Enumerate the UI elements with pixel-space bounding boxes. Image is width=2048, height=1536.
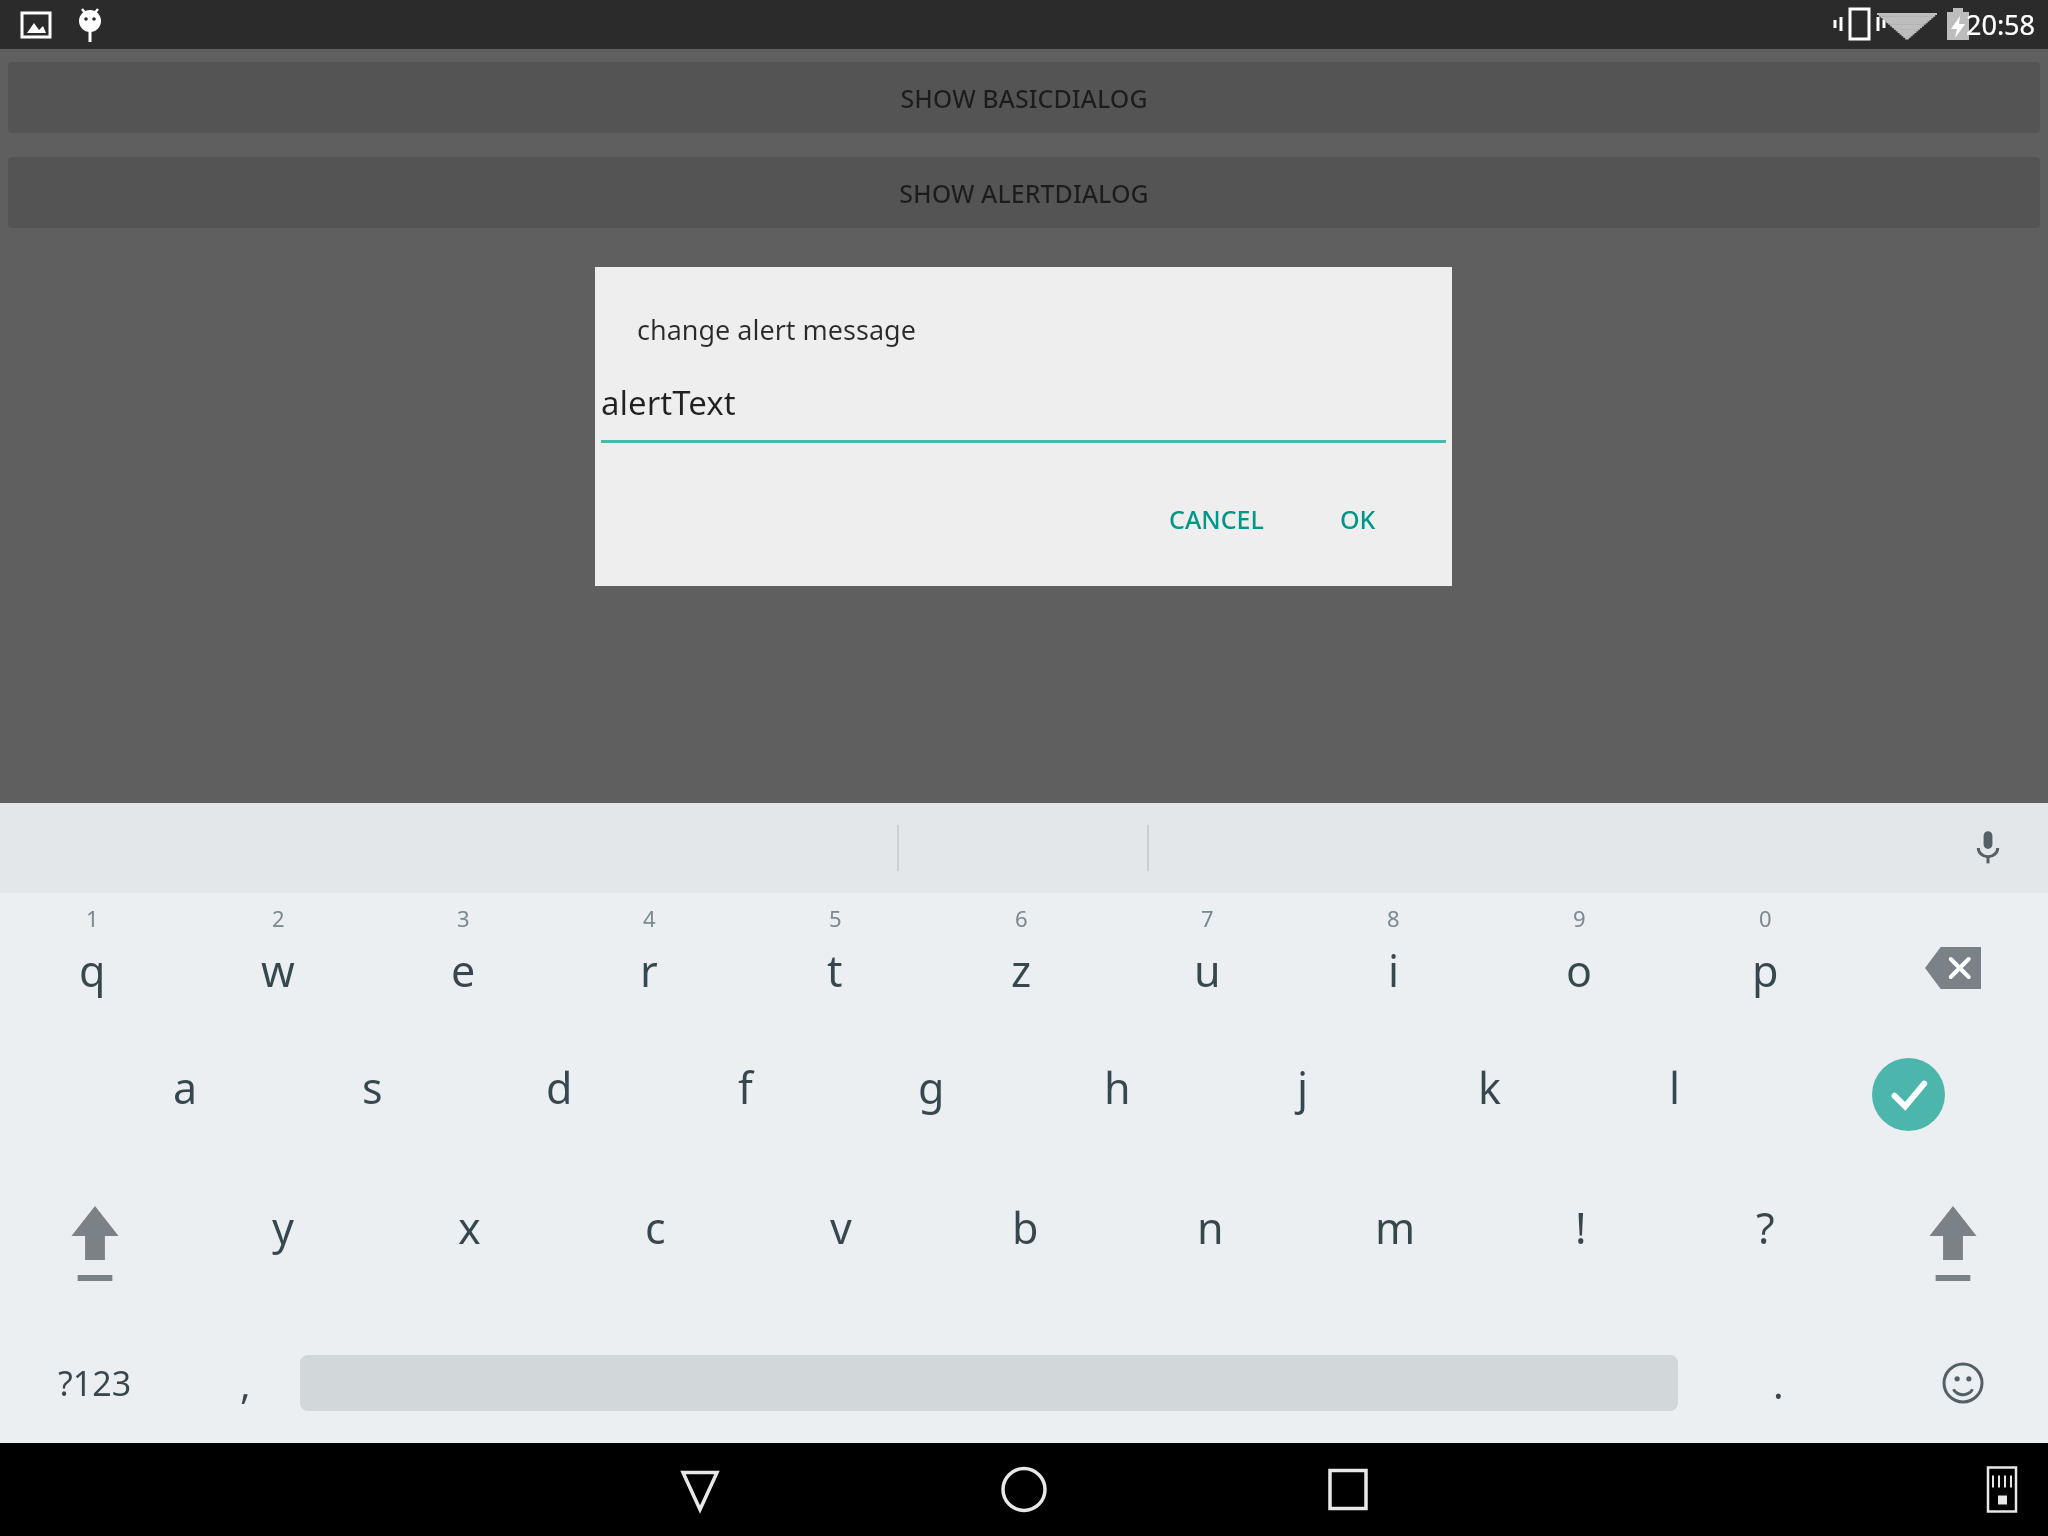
button[interactable]: Enter: [1768, 1058, 2048, 1188]
button[interactable]: 9: [1486, 903, 1672, 1033]
button[interactable]: 1: [0, 903, 185, 1033]
staticText: 9: [1573, 903, 1586, 933]
staticText: alertText: [601, 380, 736, 425]
button[interactable]: Recent apps: [1308, 1450, 1388, 1530]
staticText: b: [1012, 1198, 1039, 1257]
staticText: w: [261, 941, 295, 1000]
button[interactable]: ,: [190, 1333, 300, 1433]
button[interactable]: 2: [185, 903, 370, 1033]
staticText: k: [1478, 1058, 1501, 1117]
staticText: ?: [1756, 1198, 1775, 1257]
staticText: 5: [829, 903, 842, 933]
button[interactable]: 0: [1672, 903, 1858, 1033]
button[interactable]: g: [838, 1058, 1024, 1188]
button[interactable]: 8: [1300, 903, 1486, 1033]
button[interactable]: v: [748, 1198, 933, 1328]
staticText: !: [1575, 1198, 1587, 1257]
staticText: 1: [86, 903, 99, 933]
staticText: q: [79, 941, 106, 1000]
button[interactable]: .: [1678, 1333, 1878, 1433]
button[interactable]: s: [279, 1058, 466, 1188]
staticText: OK: [1340, 502, 1376, 536]
button[interactable]: h: [1024, 1058, 1210, 1188]
button[interactable]: k: [1396, 1058, 1582, 1188]
button[interactable]: m: [1303, 1198, 1488, 1328]
staticText: ?123: [58, 1360, 132, 1406]
staticText: f: [738, 1058, 753, 1117]
staticText: l: [1669, 1058, 1681, 1117]
button[interactable]: 3: [370, 903, 556, 1033]
button[interactable]: Shift: [1858, 1198, 2048, 1328]
staticText: y: [272, 1198, 294, 1257]
button[interactable]: ?: [1673, 1198, 1858, 1328]
button[interactable]: a: [92, 1058, 279, 1188]
button[interactable]: Home: [984, 1450, 1064, 1530]
button[interactable]: Shift: [0, 1198, 190, 1328]
staticText: SHOW ALERTDIALOG: [899, 176, 1149, 210]
staticText: c: [645, 1198, 666, 1257]
button[interactable]: Backspace: [1858, 903, 2048, 1033]
button[interactable]: 7: [1114, 903, 1300, 1033]
staticText: v: [830, 1198, 852, 1257]
staticText: s: [362, 1058, 383, 1117]
staticText: i: [1388, 941, 1400, 1000]
button[interactable]: c: [562, 1198, 748, 1328]
staticText: r: [640, 941, 658, 1000]
staticText: ,: [240, 1356, 251, 1410]
button[interactable]: Voice input: [1958, 818, 2018, 878]
staticText: CANCEL: [1169, 502, 1264, 536]
button[interactable]: ?123: [0, 1333, 190, 1433]
staticText: n: [1197, 1198, 1224, 1257]
button[interactable]: SHOW BASICDIALOG: [8, 62, 2040, 133]
staticText: a: [173, 1058, 198, 1117]
button[interactable]: n: [1118, 1198, 1303, 1328]
staticText: 7: [1201, 903, 1214, 933]
staticText: p: [1752, 941, 1779, 1000]
button[interactable]: Emoji: [1878, 1333, 2048, 1433]
button[interactable]: d: [466, 1058, 652, 1188]
staticText: e: [451, 941, 476, 1000]
staticText: 8: [1387, 903, 1400, 933]
button[interactable]: Back: [660, 1450, 740, 1530]
button[interactable]: b: [933, 1198, 1118, 1328]
button[interactable]: f: [652, 1058, 838, 1188]
button[interactable]: y: [190, 1198, 376, 1328]
staticText: SHOW BASICDIALOG: [900, 81, 1148, 115]
button[interactable]: 6: [928, 903, 1114, 1033]
staticText: 20:58: [1966, 6, 2036, 43]
staticText: 2: [272, 903, 285, 933]
button[interactable]: !: [1488, 1198, 1673, 1328]
staticText: t: [827, 941, 843, 1000]
staticText: o: [1566, 941, 1593, 1000]
staticText: 4: [643, 903, 656, 933]
button[interactable]: j: [1210, 1058, 1396, 1188]
button[interactable]: 4: [556, 903, 742, 1033]
button[interactable]: x: [376, 1198, 562, 1328]
staticText: z: [1011, 941, 1032, 1000]
staticText: change alert message: [637, 311, 916, 348]
button[interactable]: Switch keyboard: [1968, 1455, 2038, 1525]
button[interactable]: SHOW ALERTDIALOG: [8, 157, 2040, 228]
button[interactable]: l: [1582, 1058, 1768, 1188]
staticText: d: [546, 1058, 573, 1117]
staticText: j: [1297, 1058, 1309, 1117]
staticText: g: [918, 1058, 945, 1117]
button[interactable]: CANCEL: [1155, 492, 1278, 546]
staticText: u: [1194, 941, 1221, 1000]
staticText: x: [458, 1198, 481, 1257]
button[interactable]: 5: [742, 903, 928, 1033]
staticText: h: [1104, 1058, 1131, 1117]
button[interactable]: OK: [1326, 492, 1390, 546]
staticText: 0: [1759, 903, 1772, 933]
staticText: 3: [457, 903, 470, 933]
staticText: 6: [1015, 903, 1028, 933]
staticText: m: [1375, 1198, 1416, 1257]
staticText: .: [1773, 1356, 1784, 1410]
